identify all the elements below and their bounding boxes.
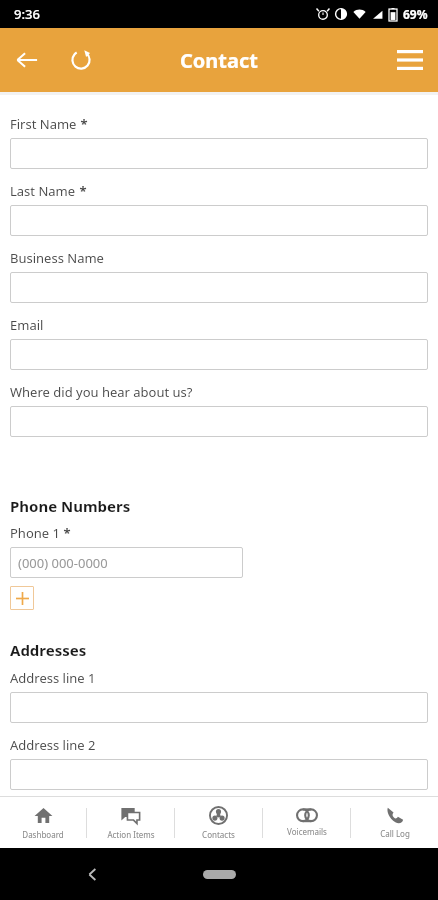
button[interactable]: Last Name: [10, 205, 428, 236]
staticText: Contacts: [202, 829, 235, 840]
staticText: Last Name: [10, 182, 76, 200]
staticText: Dashboard: [22, 829, 64, 840]
button[interactable]: Refresh: [54, 33, 108, 87]
staticText: 9:36: [14, 5, 40, 23]
button[interactable]: Voicemails: [263, 797, 350, 848]
staticText: Address line 1: [10, 669, 96, 687]
button[interactable]: Contacts: [175, 797, 262, 848]
staticText: Email: [10, 316, 44, 334]
button[interactable]: Home: [203, 870, 236, 879]
button[interactable]: Where did you hear about us?: [10, 406, 428, 437]
staticText: Action Items: [107, 829, 155, 840]
button[interactable]: Address line 2: [10, 759, 428, 790]
staticText: (000) 000-0000: [18, 554, 108, 572]
staticText: Business Name: [10, 249, 104, 267]
staticText: First Name: [10, 115, 77, 133]
button[interactable]: Dashboard: [0, 797, 86, 848]
staticText: Call Log: [380, 828, 410, 839]
staticText: Voicemails: [287, 826, 327, 837]
staticText: *: [60, 524, 71, 542]
staticText: Phone Numbers: [10, 496, 131, 516]
button[interactable]: Menu: [382, 32, 438, 88]
staticText: 69%: [403, 6, 428, 22]
button[interactable]: Back: [80, 862, 104, 886]
staticText: Phone 1: [10, 524, 60, 542]
button[interactable]: Business Name: [10, 272, 428, 303]
button[interactable]: Add phone number: [10, 586, 34, 610]
button[interactable]: Address line 1: [10, 692, 428, 723]
staticText: Addresses: [10, 640, 87, 660]
staticText: Address line 2: [10, 736, 96, 754]
button[interactable]: (000) 000-0000: [10, 547, 243, 578]
staticText: *: [77, 115, 88, 133]
staticText: Where did you hear about us?: [10, 383, 193, 401]
staticText: Contact: [180, 47, 258, 74]
button[interactable]: Email: [10, 339, 428, 370]
button[interactable]: Action Items: [87, 797, 174, 848]
button[interactable]: Call Log: [351, 797, 438, 848]
staticText: *: [76, 182, 87, 200]
button[interactable]: Back: [0, 33, 54, 87]
button[interactable]: First Name: [10, 138, 428, 169]
